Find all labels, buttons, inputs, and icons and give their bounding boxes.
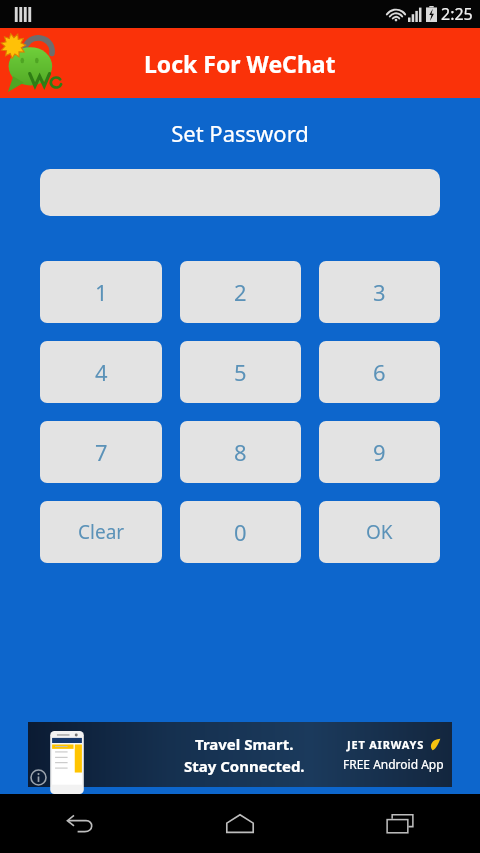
button[interactable]: 3: [319, 261, 440, 323]
button[interactable]: 6: [319, 341, 440, 403]
staticText: 2: [234, 277, 247, 307]
staticText: 3: [373, 277, 386, 307]
button[interactable]: 2: [180, 261, 301, 323]
staticText: Lock For WeChat: [144, 48, 336, 79]
staticText: Clear: [78, 519, 125, 545]
button[interactable]: Clear: [40, 501, 162, 563]
staticText: FREE Android App: [343, 756, 444, 772]
staticText: 0: [234, 517, 247, 547]
button[interactable]: OK: [319, 501, 440, 563]
button[interactable]: 1: [40, 261, 162, 323]
button[interactable]: Home: [160, 794, 320, 853]
button[interactable]: 8: [180, 421, 301, 483]
button[interactable]: [40, 169, 440, 216]
staticText: 2:25: [441, 3, 473, 25]
button[interactable]: Back: [0, 794, 160, 853]
staticText: OK: [366, 519, 393, 545]
staticText: 9: [373, 437, 386, 467]
staticText: JET AIRWAYS: [347, 737, 425, 752]
staticText: 6: [373, 357, 386, 387]
button[interactable]: 0: [180, 501, 301, 563]
staticText: 7: [95, 437, 108, 467]
button[interactable]: 5: [180, 341, 301, 403]
staticText: Set Password: [171, 118, 309, 148]
button[interactable]: 7: [40, 421, 162, 483]
button[interactable]: Travel Smart.: [28, 722, 452, 787]
button[interactable]: Recent apps: [320, 794, 480, 853]
staticText: 4: [95, 357, 108, 387]
staticText: Stay Connected.: [184, 756, 305, 776]
staticText: Travel Smart.: [195, 734, 294, 754]
staticText: 5: [234, 357, 247, 387]
staticText: 8: [234, 437, 247, 467]
button[interactable]: Ad information: [30, 769, 47, 786]
button[interactable]: 4: [40, 341, 162, 403]
staticText: 1: [95, 277, 108, 307]
button[interactable]: 9: [319, 421, 440, 483]
